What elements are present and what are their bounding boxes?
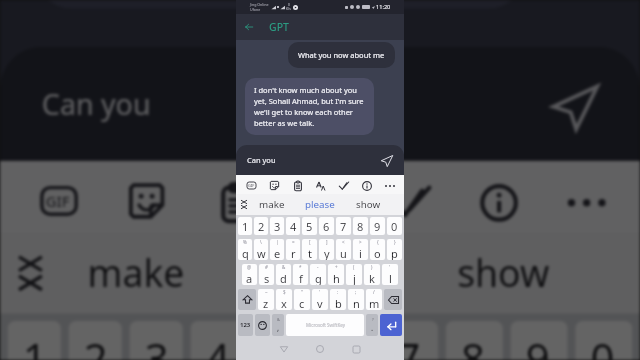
button[interactable]: Back — [241, 19, 257, 35]
button[interactable]: make — [46, 233, 229, 313]
button[interactable]: Microsoft SwiftKey — [286, 314, 364, 336]
button[interactable]: Enter — [380, 314, 402, 336]
button[interactable]: show — [344, 194, 392, 215]
button[interactable]: & — [276, 264, 291, 285]
button[interactable]: sticker — [268, 179, 281, 192]
button[interactable]: Expand suggestions — [240, 200, 248, 209]
button[interactable]: 7 — [336, 217, 351, 235]
button[interactable]: ? — [366, 314, 378, 336]
button[interactable]: GIF — [245, 179, 258, 192]
button[interactable]: translate — [297, 176, 347, 226]
button[interactable]: " — [294, 289, 310, 310]
staticText: & — [282, 264, 286, 270]
button[interactable]: 5 — [302, 217, 317, 235]
button[interactable]: / — [366, 289, 382, 310]
button[interactable]: 3 — [270, 217, 284, 235]
button[interactable]: 0 — [575, 321, 632, 360]
button[interactable]: I don't know much about you yet, Sohail … — [34, 0, 526, 9]
button[interactable]: } — [387, 239, 402, 260]
staticText: " — [301, 289, 303, 295]
staticText: 6 — [323, 219, 330, 234]
button[interactable]: Send — [537, 69, 610, 142]
button[interactable]: translate — [314, 179, 327, 192]
button[interactable]: What you now about me — [288, 42, 395, 68]
button[interactable]: GPT — [269, 20, 289, 34]
staticText: l — [389, 271, 392, 285]
button[interactable]: clipboard — [209, 176, 259, 226]
staticText: Jing Online — [250, 2, 269, 7]
button[interactable]: 9 — [510, 321, 568, 360]
button[interactable]: 7 — [381, 321, 438, 360]
button[interactable]: clipboard — [291, 179, 304, 192]
button[interactable]: 8 — [353, 217, 368, 235]
button[interactable]: Backspace — [384, 289, 402, 310]
button[interactable]: 9 — [370, 217, 385, 235]
button[interactable]: < — [336, 239, 351, 260]
button[interactable]: 4 — [286, 217, 300, 235]
button[interactable]: Can you — [236, 145, 404, 175]
button[interactable]: > — [353, 239, 368, 260]
staticText: w — [257, 246, 266, 260]
button[interactable]: # — [259, 264, 274, 285]
button[interactable]: Expand suggestions — [15, 256, 46, 290]
button[interactable]: = — [286, 239, 300, 260]
button[interactable]: 2 — [254, 217, 268, 235]
button[interactable]: 4 — [190, 321, 244, 360]
button[interactable]: 5 — [251, 321, 308, 360]
button[interactable]: please — [229, 233, 411, 313]
button[interactable]: check — [385, 176, 434, 226]
button[interactable]: Shift — [238, 289, 256, 310]
button[interactable]: make — [248, 194, 296, 215]
staticText: y — [324, 246, 330, 260]
button[interactable]: $ — [276, 289, 292, 310]
button[interactable]: GIF — [34, 176, 84, 226]
button[interactable]: sticker — [122, 176, 171, 226]
button[interactable]: 6 — [319, 217, 334, 235]
button[interactable]: 1 — [238, 217, 252, 235]
button[interactable]: I don't know much about you yet, Sohail … — [245, 78, 374, 135]
button[interactable]: { — [370, 239, 385, 260]
button[interactable]: more — [560, 176, 609, 226]
button[interactable]: Back — [276, 341, 292, 357]
button[interactable]: + — [328, 264, 344, 285]
button[interactable]: ' — [312, 289, 328, 310]
button[interactable]: \ — [254, 239, 268, 260]
button[interactable]: more — [383, 179, 396, 192]
button[interactable]: 2 — [68, 321, 122, 360]
button[interactable]: ( — [346, 264, 362, 285]
staticText: ' — [319, 289, 321, 295]
button[interactable]: 3 — [129, 321, 183, 360]
button[interactable]: & — [272, 314, 284, 336]
staticText: 5 — [306, 219, 313, 234]
button[interactable]: info — [472, 176, 522, 226]
button[interactable]: % — [238, 239, 252, 260]
button[interactable]: show — [411, 233, 594, 313]
button[interactable]: Can you — [0, 47, 640, 161]
button[interactable]: info — [360, 179, 373, 192]
button[interactable]: 6 — [316, 321, 373, 360]
button[interactable]: * — [293, 264, 308, 285]
button[interactable]: 123 — [238, 314, 253, 336]
button[interactable]: ; — [348, 289, 364, 310]
button[interactable]: 0 — [387, 217, 402, 235]
button[interactable]: ] — [319, 239, 334, 260]
button[interactable]: 8 — [446, 321, 503, 360]
staticText: 0 — [288, 3, 290, 7]
button[interactable]: 1 — [8, 321, 61, 360]
button[interactable]: | — [270, 239, 284, 260]
staticText: c — [299, 296, 305, 310]
button[interactable]: ) — [364, 264, 380, 285]
staticText: n — [353, 296, 360, 310]
button[interactable]: Emoji — [255, 314, 270, 336]
button[interactable]: ~ — [258, 289, 274, 310]
button[interactable]: - — [310, 264, 326, 285]
button[interactable]: Home — [312, 341, 328, 357]
button[interactable]: ' — [382, 264, 398, 285]
button[interactable]: please — [296, 194, 344, 215]
button[interactable]: Recents — [348, 341, 364, 357]
button[interactable]: @ — [242, 264, 257, 285]
button[interactable]: Send — [377, 151, 396, 170]
button[interactable]: [ — [302, 239, 317, 260]
button[interactable]: : — [330, 289, 346, 310]
button[interactable]: check — [337, 179, 350, 192]
